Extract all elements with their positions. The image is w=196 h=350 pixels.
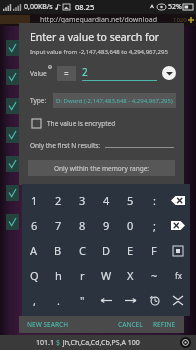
button[interactable]: DEL [166, 213, 190, 238]
button[interactable]: CLOCK [142, 288, 166, 313]
button[interactable]: Q [22, 263, 46, 288]
staticText: h [55, 268, 62, 283]
button[interactable]: The value is encrypted [32, 119, 184, 128]
button[interactable]: NEW SEARCH [25, 318, 71, 331]
staticText: Input value from -2,147,483,648 to 4,294… [30, 48, 168, 56]
staticText: 1020 [173, 16, 187, 24]
staticText: Enter a value to search for [30, 30, 160, 44]
button[interactable]: Only within the memory range: [28, 160, 175, 176]
staticText: Jh,Ch,Ca,Cd,Cb,PS,A 100 [61, 338, 140, 348]
staticText: NEW SEARCH [27, 320, 69, 329]
button[interactable]: E [118, 238, 142, 263]
button[interactable]: 9 [94, 213, 118, 238]
button[interactable]: A [22, 238, 46, 263]
staticText: r [80, 268, 85, 283]
button[interactable]: = [57, 66, 76, 81]
staticText: 2 [82, 65, 88, 79]
staticText: = [64, 68, 69, 79]
button[interactable]: 1 [22, 188, 46, 213]
button[interactable]: BKSP [166, 188, 190, 213]
button[interactable]: B [46, 238, 70, 263]
button[interactable]: ; [142, 213, 166, 238]
staticText: D: Dword (-2,147,483,648 - 4,294,967,295… [56, 97, 173, 105]
button[interactable]: Open value type dropdown [162, 66, 176, 80]
staticText: E [127, 243, 134, 258]
staticText: 101.1 [36, 338, 56, 348]
staticText: ; [153, 218, 156, 233]
staticText: C [79, 243, 86, 258]
button[interactable]: 7 [46, 213, 70, 238]
staticText: 0,00KB/s [24, 2, 53, 12]
staticText: fx [175, 270, 182, 281]
staticText: : [153, 193, 156, 208]
staticText: D [102, 243, 111, 258]
staticText: 5 [127, 193, 134, 208]
staticText: 4 [103, 193, 110, 208]
button[interactable]: 0 [118, 213, 142, 238]
staticText: F [151, 243, 157, 258]
staticText: " [80, 293, 85, 308]
button[interactable]: RIGHT [118, 288, 142, 313]
button[interactable]: 5 [118, 188, 142, 213]
staticText: The value is encrypted [47, 119, 116, 128]
button[interactable]: CHIP [166, 238, 190, 263]
staticText: http://gameguardian.net/download [40, 15, 157, 25]
staticText: 0 [127, 218, 134, 233]
staticText: CANCEL [118, 320, 143, 329]
staticText: B [54, 243, 62, 258]
button[interactable]: LEFT [94, 288, 118, 313]
button[interactable]: D: Dword (-2,147,483,648 - 4,294,967,295… [53, 93, 176, 108]
staticText: Type: [30, 96, 47, 105]
staticText: Value [30, 69, 47, 78]
button[interactable]: CANCEL [116, 318, 145, 331]
staticText: ~ [151, 268, 158, 283]
button[interactable]: : [142, 188, 166, 213]
staticText: 6 [31, 218, 38, 233]
button[interactable]: W [94, 263, 118, 288]
button[interactable]: ~ [142, 263, 166, 288]
staticText: Q [30, 268, 39, 283]
staticText: W [101, 268, 112, 283]
staticText: 9 [103, 218, 110, 233]
staticText: 7 [55, 218, 62, 233]
button[interactable]: " [70, 288, 94, 313]
button[interactable]: 3 [70, 188, 94, 213]
staticText: X [127, 268, 134, 283]
staticText: $ [56, 338, 61, 348]
staticText: 08.25 [75, 2, 95, 12]
staticText: , [33, 293, 36, 308]
staticText: 2 [55, 193, 62, 208]
staticText: A [30, 243, 38, 258]
button[interactable]: 2 [82, 65, 157, 81]
button[interactable]: 4 [94, 188, 118, 213]
staticText: 52% [168, 2, 182, 12]
button[interactable]: 6 [22, 213, 46, 238]
button[interactable]: HIDE [166, 288, 190, 313]
button[interactable]: C [70, 238, 94, 263]
button[interactable]: F [142, 238, 166, 263]
button[interactable]: h [46, 263, 70, 288]
button[interactable]: 8 [70, 213, 94, 238]
button[interactable]: , [22, 288, 46, 313]
button[interactable]: Game Guardian overlay [180, 337, 191, 348]
button[interactable]: D [94, 238, 118, 263]
staticText: 3 [79, 193, 86, 208]
staticText: 1 [31, 193, 38, 208]
staticText: REFINE [153, 320, 176, 329]
button[interactable]: . [46, 288, 70, 313]
button[interactable]: fx [166, 263, 190, 288]
staticText: . [57, 293, 60, 308]
staticText: Only within the memory range: [54, 164, 150, 173]
button[interactable]: r [70, 263, 94, 288]
button[interactable]: REFINE [151, 318, 178, 331]
button[interactable]: 2 [46, 188, 70, 213]
staticText: Only the first N results: [30, 141, 101, 150]
button[interactable]: X [118, 263, 142, 288]
staticText: 8 [79, 218, 86, 233]
